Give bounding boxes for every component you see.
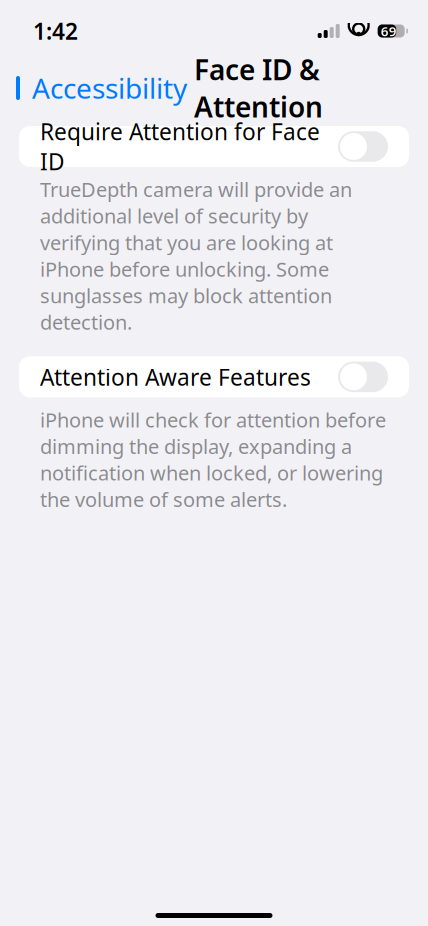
staticText: TrueDepth camera will provide an additio…: [40, 176, 352, 335]
staticText: Attention Aware Features: [40, 362, 311, 392]
button[interactable]: Accessibility: [0, 63, 187, 113]
staticText: Face ID & Attention: [194, 51, 323, 125]
staticText: Accessibility: [32, 69, 187, 107]
button[interactable]: Attention Aware Features: [19, 356, 409, 397]
staticText: 69: [381, 22, 397, 40]
staticText: Require Attention for Face ID: [40, 116, 320, 177]
staticText: iPhone will check for attention before d…: [40, 406, 386, 513]
staticText: 1:42: [33, 16, 78, 46]
button[interactable]: Require Attention for Face ID: [19, 126, 409, 167]
